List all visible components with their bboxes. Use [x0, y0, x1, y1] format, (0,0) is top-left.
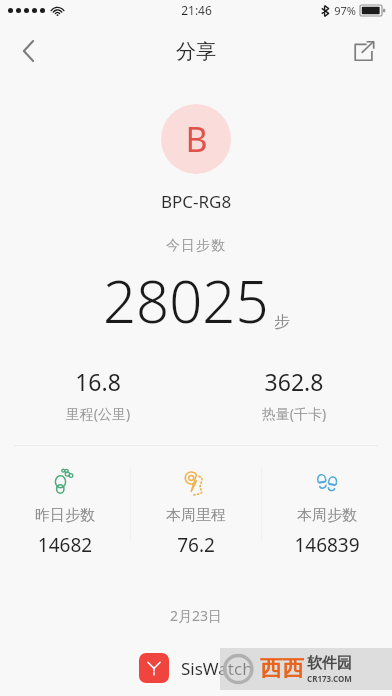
staticText: 16.8: [0, 366, 196, 397]
staticText: 本周步数: [262, 506, 392, 525]
staticText: SisWatch: [181, 657, 253, 680]
staticText: 14682: [0, 532, 130, 558]
staticText: 28025: [103, 261, 269, 340]
staticText: 21:46: [181, 2, 212, 18]
button[interactable]: 本周步数: [262, 468, 392, 558]
staticText: 软件园: [307, 654, 352, 673]
button[interactable]: 362.8: [196, 366, 392, 423]
staticText: 昨日步数: [0, 506, 130, 525]
staticText: 今日步数: [0, 237, 392, 255]
button[interactable]: 16.8: [0, 366, 196, 423]
button[interactable]: 本周里程: [131, 468, 261, 558]
staticText: 2月23日: [0, 606, 392, 625]
staticText: 97%: [334, 3, 356, 18]
staticText: BPC-RG8: [0, 190, 392, 213]
button[interactable]: Share: [336, 23, 392, 79]
staticText: B: [185, 116, 208, 162]
staticText: 步: [274, 312, 290, 332]
staticText: 里程(公里): [0, 404, 196, 423]
staticText: 热量(千卡): [196, 404, 392, 423]
staticText: CR173.COM: [307, 673, 352, 684]
button[interactable]: B: [161, 104, 231, 174]
button[interactable]: Back: [0, 23, 56, 79]
button[interactable]: 昨日步数: [0, 468, 130, 558]
staticText: 本周里程: [131, 506, 261, 525]
staticText: 分享: [176, 39, 216, 64]
staticText: 76.2: [131, 532, 261, 558]
button[interactable]: SisWatch: [0, 653, 392, 683]
staticText: 西西: [260, 655, 304, 683]
staticText: 362.8: [196, 366, 392, 397]
staticText: 146839: [262, 532, 392, 558]
